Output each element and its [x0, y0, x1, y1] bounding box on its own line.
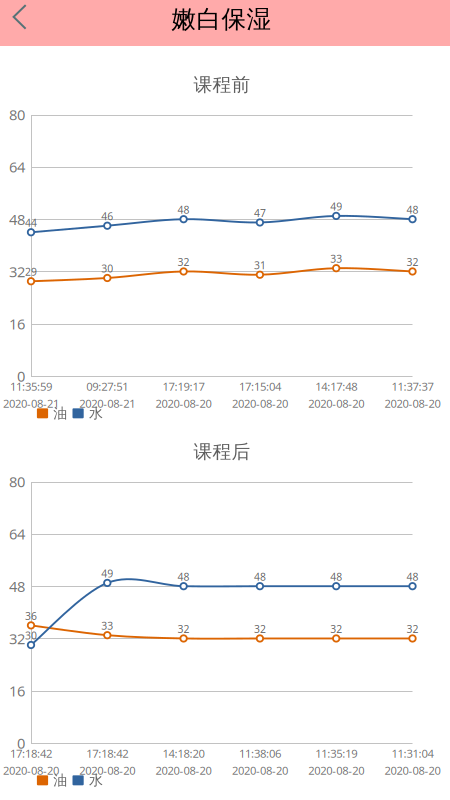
staticText: 17:15:04	[239, 379, 281, 394]
staticText: 48	[330, 570, 342, 584]
staticText: 油	[53, 771, 67, 789]
staticText: 2020-08-20	[79, 763, 135, 778]
staticText: 11:38:06	[239, 746, 281, 761]
button[interactable]: Back	[0, 0, 44, 46]
staticText: 32	[254, 622, 266, 636]
staticText: 14:18:20	[163, 746, 205, 761]
staticText: 2020-08-20	[308, 396, 364, 411]
staticText: 2020-08-20	[232, 396, 288, 411]
staticText: 17:18:42	[10, 746, 52, 761]
staticText: 80	[9, 472, 25, 492]
staticText: 48	[178, 570, 190, 584]
staticText: 29	[25, 265, 37, 279]
staticText: 48	[254, 570, 266, 584]
staticText: 36	[25, 609, 37, 623]
staticText: 30	[101, 261, 113, 276]
staticText: 嫩白保湿	[171, 4, 271, 35]
staticText: 48	[9, 209, 25, 229]
staticText: 32	[178, 622, 190, 636]
staticText: 11:31:04	[391, 746, 433, 761]
staticText: 16	[9, 681, 25, 701]
staticText: 0	[17, 366, 25, 386]
staticText: 48	[406, 570, 418, 584]
staticText: 48	[178, 203, 190, 217]
staticText: 11:35:59	[10, 379, 52, 394]
staticText: 11:37:37	[391, 379, 433, 394]
staticText: 48	[406, 203, 418, 217]
staticText: 49	[101, 566, 113, 580]
staticText: 46	[101, 209, 113, 223]
staticText: 31	[254, 258, 266, 272]
staticText: 48	[9, 576, 25, 596]
staticText: 水	[89, 404, 103, 422]
staticText: 2020-08-21	[3, 396, 59, 411]
staticText: 09:27:51	[86, 379, 128, 394]
staticText: 2020-08-20	[384, 396, 440, 411]
staticText: 49	[330, 199, 342, 213]
staticText: 课程后	[193, 440, 250, 463]
staticText: 14:17:48	[315, 379, 357, 394]
staticText: 32	[9, 628, 25, 648]
staticText: 0	[17, 733, 25, 753]
staticText: 32	[330, 622, 342, 636]
staticText: 水	[89, 771, 103, 789]
staticText: 47	[254, 206, 266, 220]
staticText: 33	[330, 252, 342, 266]
staticText: 2020-08-20	[232, 763, 288, 778]
staticText: 2020-08-20	[308, 763, 364, 778]
staticText: 44	[25, 216, 37, 230]
staticText: 2020-08-21	[79, 396, 135, 411]
staticText: 64	[9, 524, 25, 544]
staticText: 33	[101, 619, 113, 633]
staticText: 32	[406, 255, 418, 269]
staticText: 32	[178, 255, 190, 269]
staticText: 2020-08-20	[156, 396, 212, 411]
staticText: 2020-08-20	[384, 763, 440, 778]
staticText: 16	[9, 314, 25, 334]
staticText: 油	[53, 404, 67, 422]
staticText: 80	[9, 105, 25, 125]
staticText: 2020-08-20	[3, 763, 59, 778]
staticText: 32	[406, 622, 418, 636]
staticText: 64	[9, 157, 25, 177]
staticText: 17:18:42	[86, 746, 128, 761]
staticText: 17:19:17	[163, 379, 205, 394]
staticText: 30	[25, 628, 37, 643]
staticText: 32	[9, 261, 25, 281]
staticText: 2020-08-20	[156, 763, 212, 778]
staticText: 11:35:19	[315, 746, 357, 761]
staticText: 课程前	[193, 73, 250, 96]
